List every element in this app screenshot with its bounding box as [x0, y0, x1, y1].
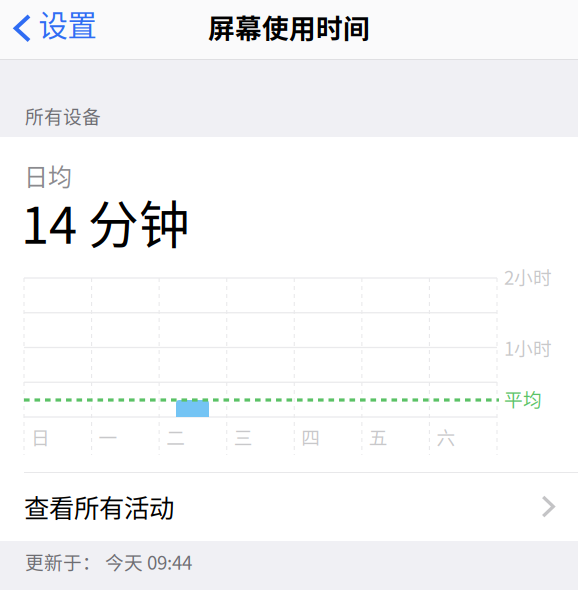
staticText: 查看所有活动 — [24, 488, 174, 525]
staticText: 二 — [166, 423, 185, 450]
staticText: 日 — [31, 423, 50, 450]
staticText: 2小时 — [504, 263, 552, 290]
staticText: 更新于： 今天 09:44 — [25, 548, 192, 575]
staticText: 14 分钟 — [21, 185, 190, 258]
staticText: 日均 — [24, 158, 72, 193]
staticText: 一 — [99, 423, 118, 450]
staticText: 五 — [369, 423, 388, 450]
staticText: 所有设备 — [25, 102, 101, 129]
staticText: 四 — [301, 423, 320, 450]
button[interactable]: 查看所有活动 — [0, 472, 578, 541]
staticText: 三 — [234, 423, 253, 450]
staticText: 设置 — [38, 2, 96, 45]
staticText: 六 — [436, 423, 455, 450]
staticText: 1小时 — [504, 334, 552, 361]
staticText: 平均 — [504, 385, 542, 412]
button[interactable]: 设置 — [0, 1, 106, 57]
staticText: 屏幕使用时间 — [208, 7, 370, 46]
